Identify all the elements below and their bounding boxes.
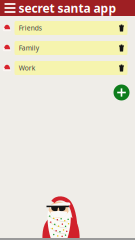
staticText: Work (19, 64, 36, 72)
staticText: Friends (19, 24, 42, 32)
button[interactable]: Family (0, 41, 127, 55)
button[interactable]: Menu (2, 0, 18, 16)
button[interactable]: Work (0, 61, 127, 75)
staticText: Family (19, 44, 39, 52)
button[interactable]: Add group (113, 84, 129, 100)
button[interactable]: Friends (0, 21, 127, 35)
staticText: secret santa app (18, 0, 116, 16)
